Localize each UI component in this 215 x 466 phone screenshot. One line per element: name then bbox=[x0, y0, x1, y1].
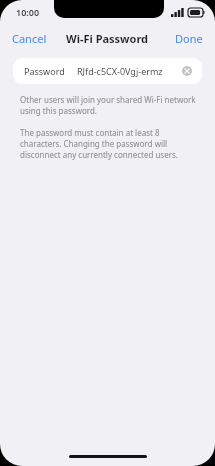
staticText: Cancel bbox=[12, 31, 47, 46]
button[interactable]: Cancel bbox=[0, 27, 59, 50]
staticText: Done bbox=[175, 31, 203, 46]
button[interactable]: Password bbox=[13, 58, 202, 84]
staticText: RJfd-c5CX-0Vgj-ermz bbox=[77, 65, 163, 77]
button[interactable]: Clear text bbox=[180, 64, 194, 78]
button[interactable]: Done bbox=[163, 27, 215, 50]
staticText: Password bbox=[24, 65, 65, 77]
staticText: Wi-Fi Password bbox=[66, 31, 149, 46]
staticText: The password must contain at least 8 cha… bbox=[20, 127, 195, 160]
staticText: Other users will join your shared Wi-Fi … bbox=[20, 94, 197, 116]
staticText: 10:00 bbox=[16, 6, 40, 18]
